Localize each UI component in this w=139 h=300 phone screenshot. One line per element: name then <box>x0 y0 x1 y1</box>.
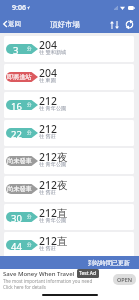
button[interactable]: 16 <box>4 92 134 118</box>
staticText: 3 <box>13 44 19 54</box>
staticText: Save Money When Travel <box>3 270 75 278</box>
button[interactable]: 30 <box>4 204 134 230</box>
staticText: 返回 <box>8 20 21 28</box>
staticText: 往 青年公園 <box>39 104 67 111</box>
staticText: OPEN <box>117 276 132 283</box>
staticText: 204 <box>39 66 58 80</box>
staticText: 16 <box>11 100 22 110</box>
staticText: 頂好市場 <box>50 20 80 29</box>
staticText: 到站時間已更新 <box>88 259 130 267</box>
staticText: 212夜 <box>39 150 68 164</box>
staticText: 212 <box>39 94 58 108</box>
button[interactable]: 即將進站 <box>4 64 134 90</box>
staticText: 22 <box>11 128 22 138</box>
button[interactable]: 3 <box>4 36 134 62</box>
staticText: 212直 <box>39 206 68 220</box>
staticText: 分 <box>27 242 32 248</box>
button[interactable]: Sort <box>107 17 122 32</box>
staticText: 往 東園 <box>39 76 56 83</box>
staticText: 分 <box>27 214 32 220</box>
staticText: 分 <box>27 46 32 52</box>
staticText: 尚未發車 <box>7 157 32 165</box>
staticText: The most important information you need <box>3 278 93 284</box>
button[interactable]: 22 <box>4 120 134 146</box>
staticText: 30 <box>11 212 22 222</box>
staticText: 往 青年公園 <box>39 160 67 167</box>
staticText: 9:06 <box>12 3 26 13</box>
staticText: 往 舊莊 <box>39 188 56 195</box>
staticText: 尚未發車 <box>7 185 32 193</box>
staticText: 212直 <box>39 234 68 248</box>
button[interactable]: Refresh <box>122 17 137 32</box>
staticText: 分 <box>27 130 32 136</box>
staticText: 212 <box>39 122 58 136</box>
staticText: Test Ad <box>79 270 97 277</box>
staticText: 往 青年公園 <box>39 216 67 223</box>
button[interactable]: 尚未發車 <box>4 176 134 202</box>
button[interactable]: 44 <box>4 232 134 258</box>
staticText: 往 舊莊 <box>39 244 56 251</box>
staticText: 即將進站 <box>7 73 32 81</box>
staticText: 往 雙和新城 <box>39 48 67 55</box>
button[interactable]: OPEN <box>113 274 136 285</box>
staticText: 204 <box>39 38 58 52</box>
staticText: Click here for details <box>3 284 46 290</box>
staticText: 分 <box>27 102 32 108</box>
button[interactable]: 返回 <box>0 18 24 30</box>
staticText: 44 <box>11 240 22 250</box>
button[interactable]: 尚未發車 <box>4 148 134 174</box>
staticText: 往 舊莊 <box>39 132 56 139</box>
staticText: 212夜 <box>39 178 68 192</box>
